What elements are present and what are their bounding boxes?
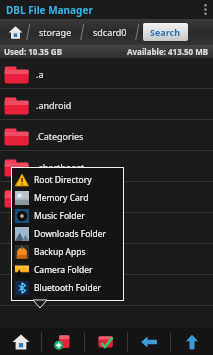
staticText: Downloads Folder — [34, 228, 107, 240]
button[interactable]: ufoknsh — [0, 337, 213, 355]
button[interactable]: Home — [0, 328, 41, 355]
button[interactable]: .chartboost — [0, 151, 213, 182]
button[interactable]: More options — [197, 0, 213, 19]
button[interactable]: .Categories — [0, 120, 213, 151]
staticText: .a — [36, 68, 44, 80]
staticText: .Categories — [36, 130, 84, 142]
button[interactable]: Up — [171, 328, 213, 355]
button[interactable]: .a — [0, 58, 213, 89]
staticText: storage — [39, 26, 72, 38]
staticText: Bluetooth Folder — [34, 282, 101, 294]
button[interactable]: Search — [143, 23, 188, 41]
button[interactable]: storage — [31, 26, 80, 38]
staticText: sdcard0 — [93, 26, 127, 38]
button[interactable]: sdcard0 — [85, 26, 135, 38]
button[interactable]: Root Directory — [12, 171, 123, 189]
button[interactable] — [0, 306, 213, 337]
staticText: Available: 413.50 MB — [127, 46, 209, 57]
staticText: Search — [150, 26, 181, 38]
button[interactable]: .android — [0, 89, 213, 120]
staticText: delete_1450951156 — [36, 192, 118, 204]
staticText: Used: 10.35 GB — [4, 46, 62, 57]
button[interactable] — [0, 244, 213, 275]
staticText: Music Folder — [34, 210, 85, 222]
button[interactable]: delete_1450951156 — [0, 182, 213, 213]
button[interactable]: Home — [4, 21, 26, 43]
button[interactable] — [0, 213, 213, 244]
button[interactable]: Backup Apps — [12, 243, 123, 261]
button[interactable]: Music Folder — [12, 207, 123, 225]
staticText: Root Directory — [34, 174, 92, 186]
button[interactable]: Camera Folder — [12, 261, 123, 279]
staticText: .chartboost — [36, 161, 85, 173]
button[interactable] — [0, 275, 213, 306]
button[interactable]: Bluetooth Folder — [12, 279, 123, 297]
staticText: ufoknsh — [36, 340, 71, 352]
button[interactable]: New folder — [42, 328, 84, 355]
staticText: Camera Folder — [34, 264, 93, 276]
button[interactable]: Back — [128, 328, 170, 355]
button[interactable]: Memory Card — [12, 189, 123, 207]
button[interactable]: Downloads Folder — [12, 225, 123, 243]
staticText: .android — [36, 99, 72, 111]
staticText: Backup Apps — [34, 246, 86, 258]
staticText: Memory Card — [34, 192, 89, 204]
button[interactable]: Select all — [85, 328, 127, 355]
staticText: DBL File Manager — [6, 3, 93, 17]
